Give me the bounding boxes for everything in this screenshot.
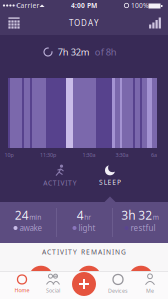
staticText: SLEEP (99, 178, 121, 187)
button[interactable]: Trends (145, 13, 165, 33)
staticText: 24 (15, 207, 29, 223)
button[interactable]: Me (135, 271, 165, 297)
staticText: Carrier (16, 1, 39, 10)
button[interactable]: Calendar (4, 13, 24, 33)
staticText: 3:30a (115, 151, 128, 159)
staticText: of 8h (95, 46, 117, 58)
staticText: min (29, 213, 41, 221)
button[interactable]: ACTIVITY (32, 160, 88, 192)
staticText: 7h 32m (58, 46, 90, 58)
staticText: hr (84, 213, 91, 221)
staticText: 100% (131, 1, 149, 10)
staticText: ACTIVITY REMAINING (42, 248, 126, 256)
staticText: 6a (151, 151, 157, 159)
staticText: 11:30p (40, 151, 56, 159)
button[interactable]: SLEEP (85, 160, 135, 192)
staticText: 10p (4, 151, 13, 159)
button[interactable]: Home (7, 271, 37, 297)
staticText: ACTIVITY (43, 179, 77, 187)
staticText: Home (14, 287, 29, 294)
staticText: 1:30a (82, 151, 95, 159)
button[interactable]: Social (38, 271, 68, 297)
staticText: light (78, 223, 95, 233)
staticText: m (153, 213, 159, 221)
button[interactable]: Log activity (72, 272, 96, 296)
staticText: Social (46, 287, 60, 294)
staticText: Me (146, 287, 154, 294)
staticText: TODAY (69, 18, 99, 28)
staticText: 3h 32 (121, 207, 152, 223)
staticText: 4 (77, 207, 84, 223)
staticText: 4:00 PM (71, 1, 97, 10)
button[interactable]: Devices (103, 271, 133, 297)
staticText: Devices (108, 287, 128, 294)
staticText: restful (130, 223, 155, 233)
staticText: awake (19, 223, 42, 233)
